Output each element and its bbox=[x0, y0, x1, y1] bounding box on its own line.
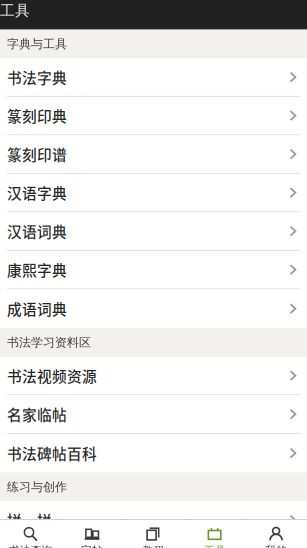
staticText: 拼一拼 bbox=[7, 509, 52, 531]
staticText: 字典与工具 bbox=[7, 36, 67, 51]
staticText: 练习与创作 bbox=[7, 479, 67, 494]
button[interactable]: 书法视频资源 bbox=[0, 357, 307, 395]
button[interactable]: 成语词典 bbox=[0, 289, 307, 328]
staticText: 书法字典 bbox=[7, 66, 67, 88]
staticText: 教程 bbox=[142, 544, 164, 548]
staticText: 成语词典 bbox=[7, 298, 67, 319]
staticText: 篆刻印谱 bbox=[7, 143, 67, 165]
button[interactable]: 书法碑帖百科 bbox=[0, 434, 307, 472]
button[interactable]: 书法字典 bbox=[0, 58, 307, 97]
staticText: 书法碑帖百科 bbox=[7, 442, 97, 464]
button[interactable]: 临摹练习 bbox=[0, 540, 307, 548]
staticText: 汉语词典 bbox=[7, 220, 67, 242]
button[interactable]: 书法查询 bbox=[0, 519, 61, 548]
staticText: 篆刻印典 bbox=[7, 105, 67, 126]
button[interactable]: 工具 bbox=[184, 519, 246, 548]
button[interactable]: 拼一拼 bbox=[0, 501, 307, 540]
staticText: 字帖 bbox=[81, 544, 103, 548]
staticText: 名家临帖 bbox=[7, 403, 67, 425]
staticText: 康熙字典 bbox=[7, 259, 67, 280]
staticText: 工具 bbox=[204, 544, 226, 548]
button[interactable]: 篆刻印典 bbox=[0, 97, 307, 135]
staticText: 书法学习资料区 bbox=[7, 335, 91, 350]
button[interactable]: 篆刻印谱 bbox=[0, 135, 307, 174]
staticText: 书法查询 bbox=[9, 544, 53, 548]
button[interactable]: 汉语字典 bbox=[0, 174, 307, 212]
staticText: 书法视频资源 bbox=[7, 365, 97, 386]
button[interactable]: 名家临帖 bbox=[0, 395, 307, 434]
button[interactable]: 康熙字典 bbox=[0, 251, 307, 289]
button[interactable]: 我的 bbox=[246, 519, 307, 548]
button[interactable]: 字帖 bbox=[61, 519, 123, 548]
button[interactable]: 汉语词典 bbox=[0, 212, 307, 251]
staticText: 汉语字典 bbox=[7, 182, 67, 203]
staticText: 工具 bbox=[0, 2, 30, 20]
button[interactable]: 教程 bbox=[123, 519, 184, 548]
staticText: 我的 bbox=[265, 544, 287, 548]
